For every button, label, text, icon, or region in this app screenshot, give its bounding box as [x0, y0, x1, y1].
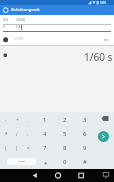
button[interactable] [98, 112, 112, 125]
staticText: f/ [3, 25, 6, 29]
staticText: 3200 [16, 17, 26, 22]
staticText: ( [5, 145, 7, 151]
staticText: 0 [63, 158, 67, 166]
button[interactable] [0, 16, 114, 25]
button[interactable] [29, 169, 41, 182]
button[interactable] [75, 169, 87, 182]
button[interactable]: 8 [58, 141, 72, 154]
staticText: . [27, 117, 29, 123]
staticText: 5 [63, 130, 67, 138]
staticText: 9 [83, 144, 87, 152]
staticText: 1.4 [15, 24, 21, 29]
staticText: ISO [3, 18, 9, 22]
button[interactable] [52, 169, 64, 182]
staticText: Deutsch [18, 160, 26, 163]
button[interactable]: 4 [38, 127, 52, 140]
button[interactable]: ( [1, 141, 11, 154]
staticText: 7 [43, 144, 47, 152]
button[interactable]: 0 [58, 155, 72, 168]
staticText: 3 [83, 116, 87, 124]
button[interactable] [98, 131, 109, 142]
button[interactable]: 1 [38, 113, 52, 126]
staticText: + [16, 117, 19, 123]
button[interactable]: 5 [58, 127, 72, 140]
button[interactable]: * [39, 157, 52, 170]
staticText: 1/125 [13, 36, 24, 41]
button[interactable] [0, 25, 114, 33]
button[interactable]: - [1, 113, 11, 126]
button[interactable]: ) [12, 141, 22, 154]
staticText: * [5, 131, 8, 137]
staticText: ms [104, 38, 109, 42]
staticText: 6 [83, 130, 87, 138]
staticText: 2 [63, 116, 67, 124]
staticText: 1/60 s [84, 50, 113, 64]
button[interactable]: * [1, 127, 11, 140]
button[interactable]: . [23, 113, 33, 126]
staticText: - [5, 117, 7, 123]
staticText: Belichtungszeit [11, 7, 40, 12]
button[interactable]: 9 [78, 141, 92, 154]
staticText: , [27, 131, 29, 137]
staticText: = [27, 145, 30, 151]
staticText: ) [16, 145, 18, 151]
button[interactable]: = [23, 141, 33, 154]
button[interactable] [0, 34, 114, 44]
button[interactable]: Deutsch [7, 158, 36, 165]
button[interactable] [100, 169, 112, 182]
staticText: 8 [63, 144, 67, 152]
staticText: # [83, 158, 87, 166]
staticText: * [44, 160, 48, 168]
staticText: 0:00 [100, 1, 106, 5]
staticText: 1 [43, 116, 47, 124]
button[interactable]: 2 [58, 113, 72, 126]
button[interactable]: , [23, 127, 33, 140]
button[interactable]: 6 [78, 127, 92, 140]
button[interactable]: 7 [38, 141, 52, 154]
staticText: 4 [43, 130, 47, 138]
staticText: / [16, 131, 18, 137]
button[interactable]: # [78, 155, 92, 168]
button[interactable]: / [12, 127, 22, 140]
button[interactable]: 3 [78, 113, 92, 126]
button[interactable]: + [12, 113, 22, 126]
